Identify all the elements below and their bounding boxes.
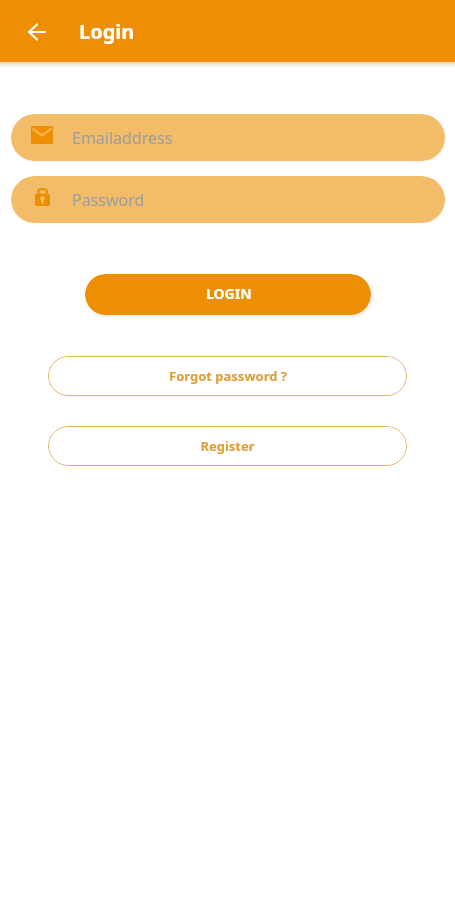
staticText: Password [72, 189, 145, 211]
button[interactable]: Register [48, 426, 407, 466]
button[interactable]: Forgot password ? [48, 356, 407, 396]
button[interactable]: Back [23, 18, 50, 45]
staticText: LOGIN [206, 284, 252, 303]
button[interactable]: Emailaddress [11, 114, 445, 161]
staticText: Register [200, 437, 255, 455]
staticText: Emailaddress [72, 127, 173, 149]
button[interactable]: LOGIN [85, 274, 371, 315]
button[interactable]: Password [11, 176, 445, 223]
staticText: Login [79, 18, 135, 45]
staticText: Forgot password ? [169, 367, 287, 385]
